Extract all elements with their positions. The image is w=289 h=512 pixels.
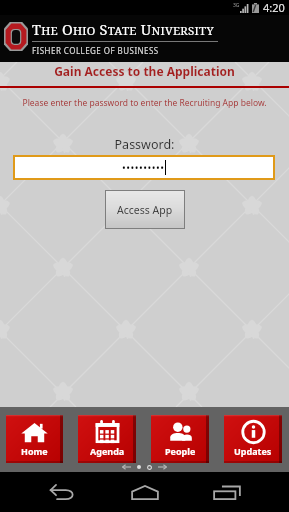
other: Next: [158, 464, 167, 470]
staticText: FISHER COLLEGE OF BUSINESS: [32, 45, 159, 56]
other: Previous: [122, 464, 131, 470]
staticText: Home: [21, 445, 48, 457]
staticText: Agenda: [90, 445, 125, 457]
button[interactable]: People: [151, 415, 209, 463]
button[interactable]: Home: [6, 415, 63, 463]
button[interactable]: Home: [124, 472, 166, 512]
staticText: ••••••••••: [122, 161, 165, 175]
staticText: Updates: [234, 445, 272, 457]
staticText: Access App: [117, 203, 173, 217]
button[interactable]: ••••••••••: [13, 155, 275, 180]
staticText: Please enter the password to enter the R…: [0, 97, 289, 109]
button[interactable]: Access App: [105, 190, 185, 229]
staticText: Password:: [0, 136, 289, 153]
button[interactable]: Updates: [224, 415, 282, 463]
staticText: People: [165, 445, 196, 457]
button[interactable]: Back: [41, 472, 83, 512]
staticText: 4:20: [263, 0, 285, 13]
button[interactable]: Agenda: [78, 415, 136, 463]
staticText: THE OHIO STATE UNIVERSITY: [32, 19, 214, 39]
staticText: 3G: [233, 2, 240, 9]
button[interactable]: Recent apps: [206, 472, 248, 512]
staticText: Gain Access to the Application: [0, 63, 289, 79]
